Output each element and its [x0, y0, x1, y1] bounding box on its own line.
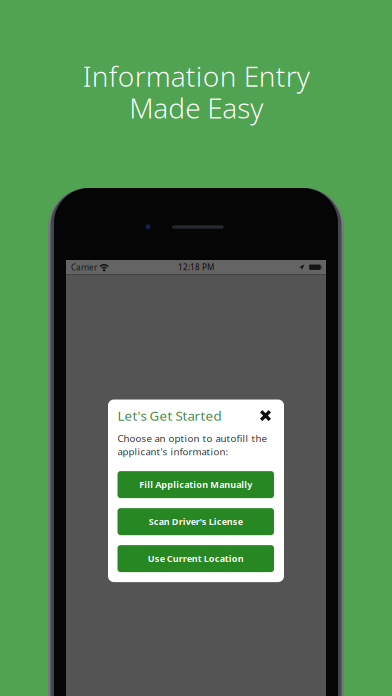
staticText: Use Current Location	[148, 552, 244, 565]
button[interactable]: Use Current Location	[117, 545, 274, 572]
staticText: 12:18 PM	[178, 262, 214, 273]
button[interactable]: Scan Driver's License	[117, 508, 274, 535]
button[interactable]: Close	[260, 410, 271, 421]
staticText: Information Entry Made Easy	[82, 60, 309, 123]
staticText: Fill Application Manually	[139, 478, 252, 491]
button[interactable]: Fill Application Manually	[117, 471, 274, 498]
staticText: Choose an option to autofill the applica…	[117, 432, 266, 458]
staticText: Scan Driver's License	[149, 515, 243, 528]
staticText: Carrier	[71, 262, 97, 273]
staticText: Let's Get Started	[117, 406, 221, 425]
